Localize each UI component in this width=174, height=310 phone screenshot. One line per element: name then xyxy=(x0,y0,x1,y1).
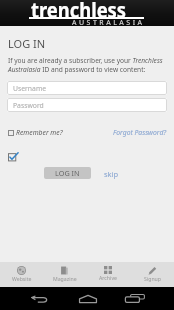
button[interactable]: Back xyxy=(19,288,60,310)
button[interactable]: Magazine xyxy=(43,262,86,287)
button[interactable]: Home xyxy=(67,287,108,310)
staticText: Remember me? xyxy=(16,128,63,137)
button[interactable]: Remember me? xyxy=(8,128,63,137)
staticText: trenchless xyxy=(31,0,126,22)
staticText: AUSTRALASIA xyxy=(72,18,145,28)
staticText: Password xyxy=(13,101,44,110)
staticText: LOG IN xyxy=(8,36,46,51)
button[interactable]: Recent apps xyxy=(114,287,155,310)
staticText: LOG IN xyxy=(55,168,80,178)
button[interactable]: LOG IN xyxy=(44,167,91,179)
button[interactable]: Archive xyxy=(86,262,130,287)
button[interactable]: Username xyxy=(7,81,167,95)
staticText: If you are already a subscriber, use you… xyxy=(8,56,166,74)
staticText: Archive xyxy=(99,274,117,281)
button[interactable]: Remember me checked xyxy=(8,151,19,162)
button[interactable]: Signup xyxy=(130,262,174,287)
staticText: Signup xyxy=(144,275,161,282)
button[interactable]: skip xyxy=(104,169,119,179)
button[interactable]: Forgot Password? xyxy=(113,128,167,137)
staticText: Username xyxy=(13,84,47,93)
staticText: Magazine xyxy=(53,275,77,282)
button[interactable]: Website xyxy=(0,262,43,287)
button[interactable]: Password xyxy=(7,98,167,112)
staticText: Website xyxy=(12,275,32,282)
